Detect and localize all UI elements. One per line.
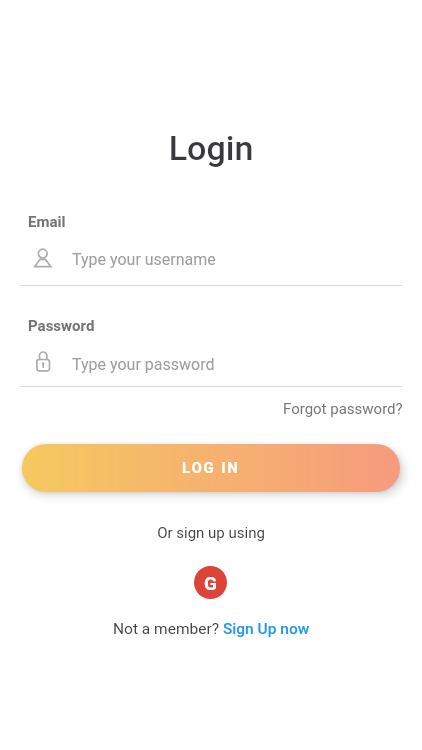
staticText: Email xyxy=(28,213,66,231)
button[interactable]: Sign Up now xyxy=(223,620,310,638)
button[interactable]: Forgot password? xyxy=(283,400,403,418)
staticText: G xyxy=(204,572,217,594)
staticText: Password xyxy=(28,317,95,335)
button[interactable]: G xyxy=(194,566,227,599)
staticText: Or sign up using xyxy=(0,524,422,542)
staticText: Not a member? xyxy=(113,620,223,638)
staticText: LOG IN xyxy=(182,459,240,477)
staticText: Type your username xyxy=(72,250,216,269)
button[interactable]: LOG IN xyxy=(22,444,400,492)
staticText: Type your password xyxy=(72,355,215,374)
button[interactable]: Type your password xyxy=(20,345,402,383)
staticText: Login xyxy=(0,128,422,168)
button[interactable]: Type your username xyxy=(20,240,402,278)
